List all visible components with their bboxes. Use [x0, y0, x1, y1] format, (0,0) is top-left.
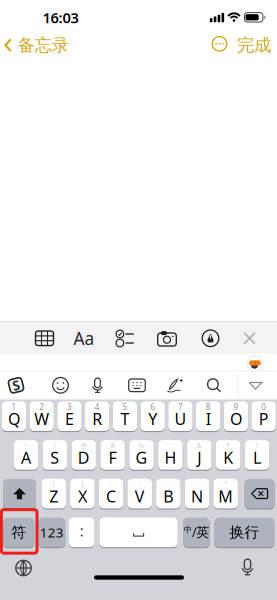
- button[interactable]: 123: [38, 517, 65, 547]
- button[interactable]: S: [43, 440, 67, 470]
- staticText: ?: [256, 441, 259, 450]
- staticText: S: [50, 447, 59, 468]
- button[interactable]: Shift: [3, 479, 36, 508]
- button[interactable]: Camera: [157, 330, 176, 346]
- button[interactable]: Y: [140, 401, 165, 431]
- button[interactable]: 换行: [214, 517, 274, 547]
- button[interactable]: M: [213, 479, 238, 508]
- button[interactable]: 顿号: [69, 517, 94, 547]
- staticText: 7: [178, 402, 183, 412]
- staticText: 9: [233, 402, 238, 412]
- button[interactable]: Z: [41, 479, 66, 508]
- staticText: ;: [167, 480, 169, 488]
- staticText: X: [78, 486, 87, 507]
- button[interactable]: Delete: [245, 479, 274, 508]
- staticText: N: [191, 486, 203, 507]
- button[interactable]: Emoji: [52, 377, 68, 393]
- button[interactable]: Search: [206, 378, 221, 393]
- button[interactable]: Handwriting: [166, 377, 184, 393]
- staticText: J: [197, 447, 201, 468]
- button[interactable]: K: [216, 440, 240, 470]
- staticText: C: [106, 486, 116, 507]
- button[interactable]: 备忘录: [4, 35, 69, 55]
- staticText: 6: [150, 402, 155, 412]
- staticText: 8: [206, 402, 211, 412]
- staticText: E: [65, 408, 74, 429]
- button[interactable]: O: [224, 401, 248, 431]
- button[interactable]: Keyboard layout: [128, 378, 146, 392]
- staticText: U: [174, 408, 186, 429]
- staticText: 换行: [229, 523, 259, 541]
- staticText: Y: [148, 408, 157, 429]
- staticText: K: [223, 447, 233, 468]
- staticText: ): [81, 480, 83, 488]
- button[interactable]: More: [211, 36, 227, 52]
- button[interactable]: A: [14, 440, 38, 470]
- staticText: 中: [184, 525, 192, 535]
- button[interactable]: C: [99, 479, 123, 508]
- button[interactable]: V: [127, 479, 152, 508]
- button[interactable]: Collapse: [248, 381, 263, 390]
- button[interactable]: Markup: [202, 330, 219, 347]
- button[interactable]: J: [187, 440, 211, 470]
- staticText: W: [34, 408, 49, 429]
- button[interactable]: 中/英: [183, 517, 210, 547]
- button[interactable]: Sticker: [247, 355, 263, 371]
- staticText: (: [53, 480, 55, 488]
- staticText: A: [21, 447, 31, 468]
- button[interactable]: Sogou: [7, 377, 24, 394]
- button[interactable]: X: [70, 479, 95, 508]
- button[interactable]: G: [129, 440, 154, 470]
- staticText: 英: [196, 524, 209, 540]
- button[interactable]: 完成: [237, 35, 271, 56]
- button[interactable]: B: [156, 479, 181, 508]
- button[interactable]: Insert table: [34, 330, 54, 347]
- staticText: ‘: [110, 480, 111, 488]
- staticText: L: [253, 447, 261, 468]
- staticText: F: [109, 447, 117, 468]
- button[interactable]: Space: [99, 517, 178, 547]
- staticText: 16:03: [42, 8, 78, 27]
- staticText: I: [206, 408, 211, 429]
- staticText: 2: [39, 402, 44, 412]
- button[interactable]: Dictation: [239, 558, 256, 576]
- button[interactable]: N: [185, 479, 209, 508]
- staticText: H: [164, 447, 176, 468]
- staticText: Q: [8, 408, 20, 429]
- staticText: -: [196, 480, 198, 488]
- staticText: D: [78, 447, 90, 468]
- button[interactable]: P: [251, 401, 276, 431]
- staticText: G: [135, 447, 147, 468]
- staticText: 完成: [237, 35, 271, 56]
- button[interactable]: W: [29, 401, 54, 431]
- staticText: :: [139, 480, 141, 488]
- staticText: “: [225, 480, 227, 488]
- staticText: 123: [40, 523, 64, 541]
- staticText: M: [218, 486, 233, 507]
- staticText: 4: [95, 402, 100, 412]
- button[interactable]: L: [245, 440, 269, 470]
- button[interactable]: U: [168, 401, 192, 431]
- staticText: V: [135, 486, 145, 507]
- button[interactable]: 符: [3, 517, 34, 547]
- button[interactable]: D: [71, 440, 96, 470]
- button[interactable]: Q: [2, 401, 26, 431]
- staticText: *: [226, 441, 230, 450]
- button[interactable]: Format: [73, 327, 94, 350]
- button[interactable]: R: [85, 401, 109, 431]
- staticText: 3: [67, 402, 72, 412]
- staticText: @: [81, 441, 87, 450]
- button[interactable]: Next keyboard: [15, 560, 31, 576]
- button[interactable]: T: [113, 401, 137, 431]
- button[interactable]: Voice input: [89, 377, 105, 393]
- button[interactable]: E: [57, 401, 82, 431]
- button[interactable]: Checklist: [115, 330, 134, 347]
- staticText: R: [92, 408, 102, 429]
- staticText: 备忘录: [18, 35, 69, 56]
- button[interactable]: H: [158, 440, 183, 470]
- staticText: O: [230, 408, 242, 429]
- button[interactable]: I: [196, 401, 220, 431]
- button[interactable]: Dismiss: [243, 332, 256, 344]
- staticText: 1: [11, 402, 16, 412]
- button[interactable]: F: [100, 440, 125, 470]
